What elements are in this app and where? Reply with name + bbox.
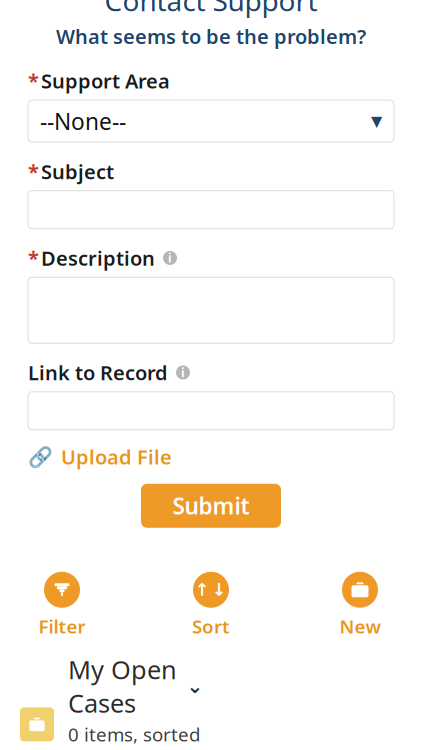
button[interactable]: ↑: [163, 572, 259, 639]
staticText: Upload File: [61, 443, 172, 470]
staticText: ⌄: [186, 675, 203, 698]
staticText: Contact Support: [104, 0, 317, 19]
staticText: Filter: [38, 614, 85, 639]
staticText: 0 items, sorted by Case Number: [68, 722, 200, 750]
staticText: ↑: [195, 580, 210, 600]
staticText: Support Area: [41, 67, 170, 94]
staticText: New: [339, 614, 380, 639]
button[interactable]: --None--: [28, 100, 394, 142]
button[interactable]: Filter: [14, 572, 110, 639]
staticText: i: [181, 364, 185, 380]
staticText: 🔗: [28, 445, 53, 468]
staticText: ↓: [212, 580, 227, 600]
staticText: *: [28, 67, 39, 94]
staticText: *: [28, 245, 39, 271]
button[interactable]: 🔗: [28, 442, 394, 472]
button[interactable]: [28, 392, 394, 430]
staticText: My Open Cases: [68, 653, 177, 720]
staticText: Link to Record: [28, 359, 168, 386]
staticText: i: [168, 250, 172, 266]
staticText: Description: [41, 245, 155, 271]
button[interactable]: New: [312, 572, 408, 639]
button[interactable]: [28, 191, 394, 229]
staticText: *: [28, 158, 39, 185]
staticText: Submit: [172, 491, 249, 521]
staticText: ▼: [371, 113, 382, 129]
staticText: Sort: [192, 614, 230, 639]
staticText: What seems to be the problem?: [56, 23, 366, 50]
button[interactable]: Change list view: [185, 676, 205, 696]
staticText: --None--: [40, 106, 126, 136]
button[interactable]: [28, 277, 394, 343]
button[interactable]: Submit: [141, 484, 281, 528]
staticText: Subject: [41, 158, 114, 185]
